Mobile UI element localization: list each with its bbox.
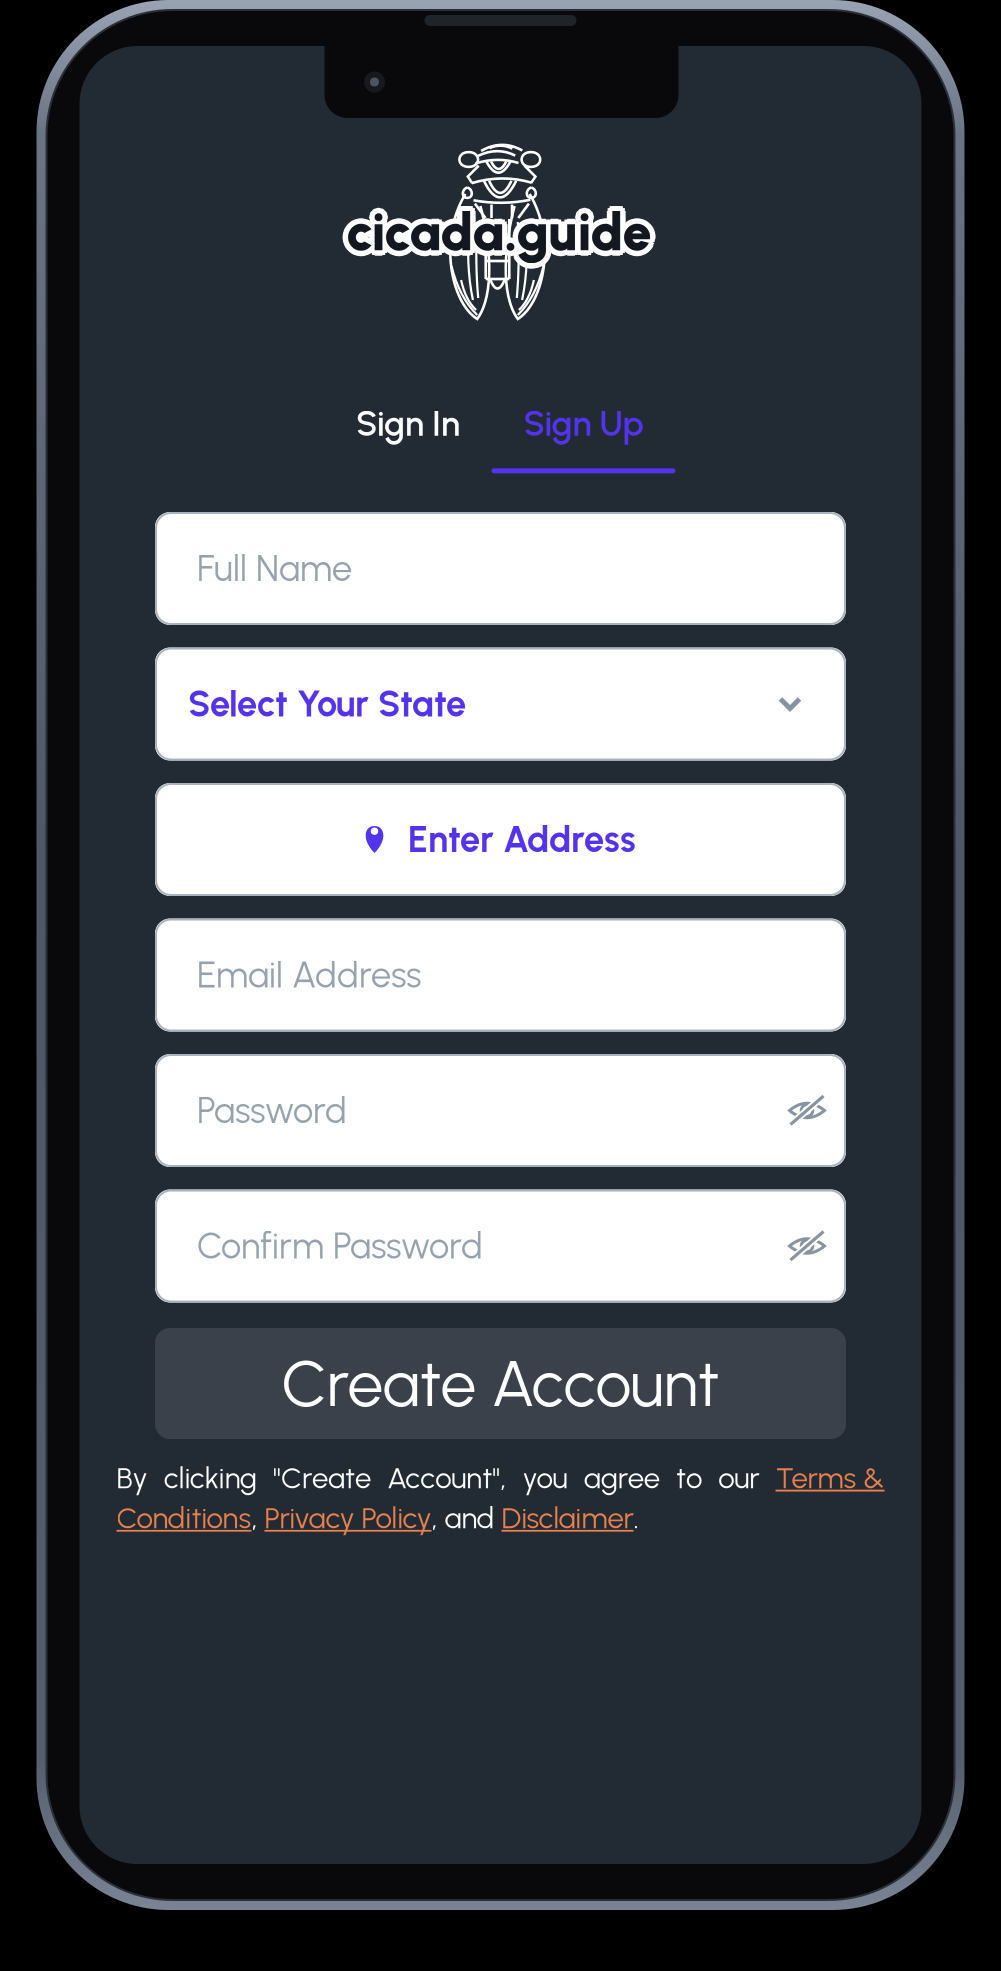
staticText: Conditions <box>116 1500 251 1536</box>
staticText: By <box>116 1460 147 1495</box>
staticText: Disclaimer <box>501 1500 633 1536</box>
button[interactable]: Terms & <box>775 1460 884 1495</box>
staticText: cicada.guide <box>341 201 646 263</box>
staticText: Full Name <box>197 547 352 590</box>
staticText: . <box>633 1500 638 1536</box>
staticText: Account", <box>387 1460 506 1495</box>
staticText: cicada.guide <box>346 195 651 258</box>
button[interactable]: Sign In <box>325 403 490 473</box>
staticText: cicada.guide <box>346 201 651 263</box>
staticText: cicada.guide <box>351 203 656 266</box>
button[interactable]: Create Account <box>155 1328 846 1439</box>
staticText: , and <box>431 1500 501 1536</box>
staticText: cicada.guide <box>351 198 656 260</box>
staticText: cicada.guide <box>344 206 649 268</box>
button[interactable]: Conditions <box>116 1500 251 1536</box>
staticText: cicada.guide <box>349 196 654 258</box>
staticText: cicada.guide <box>342 198 647 260</box>
staticText: Create Account <box>281 1345 719 1422</box>
button[interactable]: Privacy Policy <box>264 1500 431 1536</box>
staticText: agree <box>584 1460 660 1495</box>
staticText: you <box>522 1460 567 1495</box>
staticText: Enter Address <box>408 818 636 861</box>
staticText: cicada.guide <box>346 206 651 269</box>
staticText: clicking <box>164 1460 257 1495</box>
staticText: "Create <box>273 1460 371 1495</box>
button[interactable]: Enter Address <box>155 783 846 896</box>
staticText: cicada.guide <box>349 206 654 268</box>
staticText: our <box>718 1460 759 1495</box>
staticText: Sign Up <box>523 403 643 444</box>
staticText: Sign In <box>356 403 460 444</box>
button[interactable]: Disclaimer <box>501 1500 633 1536</box>
staticText: to <box>676 1460 702 1495</box>
staticText: Email Address <box>197 953 421 997</box>
staticText: , <box>251 1500 264 1536</box>
staticText: cicada.guide <box>352 201 657 263</box>
button[interactable]: Sign Up <box>491 403 675 473</box>
button[interactable]: Select Your State <box>155 647 846 760</box>
staticText: Privacy Policy <box>264 1500 431 1536</box>
staticText: Terms & <box>775 1460 884 1495</box>
staticText: cicada.guide <box>342 203 647 266</box>
staticText: Password <box>197 1089 347 1132</box>
staticText: cicada.guide <box>344 196 649 258</box>
staticText: Select Your State <box>188 682 466 726</box>
staticText: Confirm Password <box>197 1224 483 1268</box>
